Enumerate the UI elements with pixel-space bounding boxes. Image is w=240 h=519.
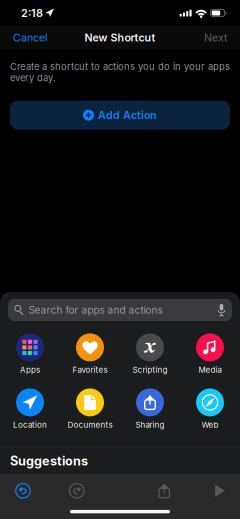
staticText: Apps bbox=[20, 365, 40, 375]
staticText: Sharing bbox=[135, 420, 164, 430]
button[interactable]: Location bbox=[0, 386, 60, 432]
staticText: Add Action bbox=[98, 109, 157, 121]
staticText: Favorites bbox=[72, 365, 107, 375]
button[interactable]: Run bbox=[208, 481, 232, 501]
staticText: Documents bbox=[67, 420, 112, 430]
staticText: Search for apps and actions bbox=[28, 304, 162, 316]
staticText: 𝒙 bbox=[144, 337, 156, 357]
staticText: New Shortcut bbox=[84, 31, 155, 44]
button[interactable]: Add Action bbox=[10, 101, 230, 130]
button[interactable]: Favorites bbox=[60, 331, 120, 377]
staticText: Next bbox=[204, 31, 227, 44]
staticText: Media bbox=[198, 365, 221, 375]
staticText: Create a shortcut to actions you do in y… bbox=[10, 61, 230, 84]
staticText: Suggestions bbox=[10, 453, 88, 468]
button[interactable]: Sharing bbox=[120, 386, 180, 432]
button[interactable]: Web bbox=[180, 386, 240, 432]
button[interactable]: Media bbox=[180, 331, 240, 377]
button[interactable]: Next bbox=[194, 27, 237, 48]
button[interactable]: Apps bbox=[0, 331, 60, 377]
staticText: 2:18 bbox=[21, 6, 43, 20]
staticText: Web bbox=[201, 420, 218, 430]
staticText: Scripting bbox=[132, 365, 167, 375]
button[interactable]: Cancel bbox=[3, 27, 58, 48]
button[interactable]: Share bbox=[154, 481, 174, 501]
staticText: Cancel bbox=[13, 31, 48, 44]
staticText: Location bbox=[13, 420, 47, 430]
button[interactable]: Documents bbox=[60, 386, 120, 432]
button[interactable]: Undo bbox=[13, 481, 33, 501]
button[interactable]: Search for apps and actions bbox=[8, 299, 232, 321]
button[interactable]: 𝒙 bbox=[120, 331, 180, 377]
button[interactable]: Redo bbox=[67, 481, 87, 501]
